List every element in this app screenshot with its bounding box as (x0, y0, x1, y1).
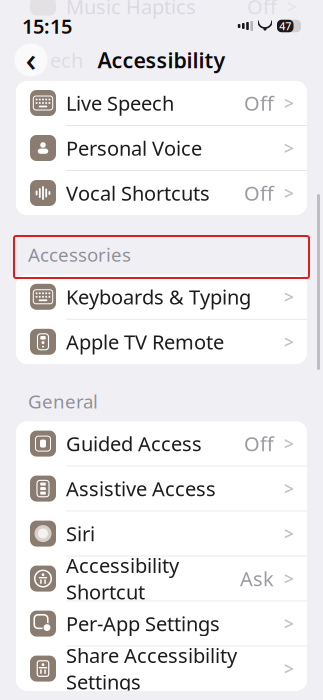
button[interactable]: Vocal Shortcuts (16, 171, 307, 215)
staticText: Personal Voice (66, 135, 202, 161)
staticText: General (28, 389, 98, 414)
staticText: Off (244, 180, 274, 206)
staticText: > (284, 285, 294, 308)
button[interactable]: Assistive Access (16, 467, 307, 512)
staticText: > (284, 330, 294, 353)
button[interactable]: Keyboards & Typing (16, 275, 307, 320)
staticText: Music Haptics (66, 0, 196, 20)
staticText: > (287, 0, 297, 18)
button[interactable]: Apple TV Remote (16, 320, 307, 364)
staticText: Live Speech (66, 90, 174, 116)
staticText: ‹ (25, 36, 36, 81)
staticText: > (284, 432, 294, 455)
staticText: Keyboards & Typing (66, 283, 251, 310)
staticText: > (284, 567, 294, 590)
button[interactable]: Per-App Settings (16, 602, 307, 647)
staticText: > (284, 181, 294, 204)
staticText: Share Accessibility Settings (66, 642, 237, 695)
staticText: Siri (66, 520, 95, 547)
staticText: Accessibility Shortcut (66, 552, 179, 605)
button[interactable]: Guided Access (16, 422, 307, 467)
staticText: Off (247, 0, 277, 20)
staticText: Apple TV Remote (66, 328, 224, 355)
button[interactable]: Accessibility Shortcut (16, 557, 307, 602)
button[interactable]: Share Accessibility Settings (16, 647, 307, 691)
staticText: > (284, 612, 294, 635)
staticText: > (284, 136, 294, 159)
staticText: ech (50, 47, 83, 73)
staticText: > (284, 657, 294, 680)
staticText: Ask (240, 565, 274, 592)
staticText: Off (244, 430, 274, 457)
button[interactable]: Back (14, 43, 48, 77)
staticText: > (284, 477, 294, 500)
staticText: Per-App Settings (66, 610, 220, 637)
staticText: 15:15 (22, 13, 72, 39)
staticText: 47 (279, 19, 291, 33)
staticText: Accessories (28, 242, 131, 267)
button[interactable]: Personal Voice (16, 126, 307, 171)
staticText: Assistive Access (66, 475, 216, 502)
staticText: > (284, 522, 294, 545)
staticText: Vocal Shortcuts (66, 180, 210, 206)
staticText: Guided Access (66, 430, 202, 457)
button[interactable]: Siri (16, 512, 307, 557)
staticText: Accessibility (97, 46, 225, 74)
staticText: Off (244, 90, 274, 116)
button[interactable]: Live Speech (16, 81, 307, 126)
staticText: > (284, 91, 294, 114)
